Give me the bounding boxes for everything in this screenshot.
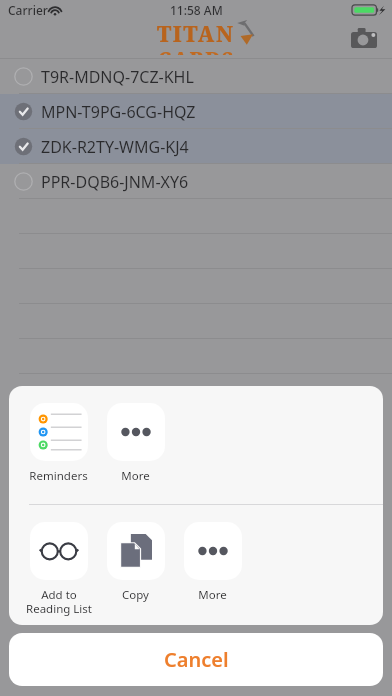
button[interactable]: More [97,403,174,484]
staticText: More [198,587,227,603]
staticText: Add to Reading List [26,587,92,616]
staticText: 11:58 AM [170,2,223,18]
button[interactable]: T9R-MDNQ-7CZ-KHL [0,59,392,94]
button[interactable]: MPN-T9PG-6CG-HQZ [0,94,392,129]
staticText: T9R-MDNQ-7CZ-KHL [41,66,194,88]
button[interactable]: ZDK-R2TY-WMG-KJ4 [0,129,392,164]
button[interactable]: Reminders [20,403,97,484]
staticText: PPR-DQB6-JNM-XY6 [41,171,189,193]
staticText: Reminders [29,468,88,484]
button[interactable]: PPR-DQB6-JNM-XY6 [0,164,392,199]
staticText: TITAN [157,20,235,49]
staticText: CARDS [158,46,235,55]
button[interactable]: Camera [344,18,384,58]
button[interactable]: Copy [97,522,174,603]
staticText: Cancel [164,646,229,673]
staticText: MPN-T9PG-6CG-HQZ [41,101,196,123]
staticText: Copy [122,587,149,603]
button[interactable]: Cancel [9,633,383,686]
button[interactable]: More [174,522,251,603]
staticText: More [121,468,150,484]
staticText: Carrier [8,2,48,18]
button[interactable]: Add to Reading List [20,522,97,616]
staticText: ZDK-R2TY-WMG-KJ4 [41,136,189,158]
